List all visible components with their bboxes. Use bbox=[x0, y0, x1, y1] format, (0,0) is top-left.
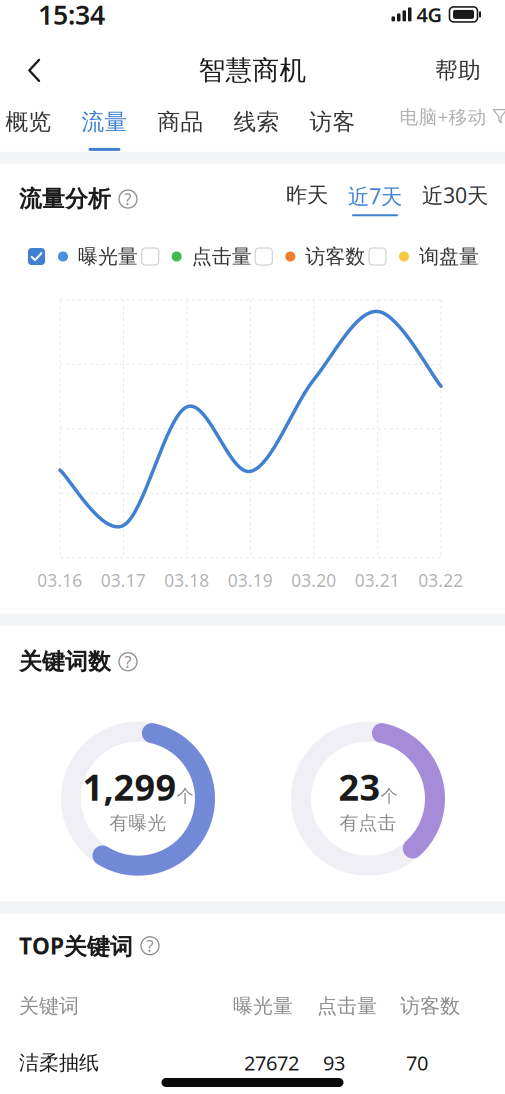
button[interactable]: 访客 bbox=[303, 96, 361, 154]
staticText: 03.21 bbox=[355, 569, 400, 592]
staticText: 帮助 bbox=[435, 56, 481, 84]
staticText: 关键词数 bbox=[19, 648, 111, 676]
staticText: 03.16 bbox=[37, 569, 82, 592]
staticText: TOP关键词 bbox=[19, 931, 133, 961]
staticText: 访客 bbox=[309, 108, 355, 136]
staticText: 概览 bbox=[5, 108, 51, 136]
staticText: 访客数 bbox=[305, 244, 365, 269]
button[interactable]: 帮助 bbox=[423, 45, 481, 95]
staticText: 03.19 bbox=[228, 569, 273, 592]
button[interactable]: 电脑+移动 bbox=[397, 96, 505, 154]
staticText: 电脑+移动 bbox=[399, 104, 486, 129]
staticText: 昨天 bbox=[286, 182, 328, 208]
staticText: 曝光量 bbox=[233, 994, 293, 1018]
staticText: 1,299 bbox=[82, 763, 176, 811]
staticText: 点击量 bbox=[192, 244, 252, 269]
staticText: 有曝光 bbox=[109, 812, 166, 834]
staticText: 有点击 bbox=[339, 812, 396, 834]
staticText: 关键词 bbox=[19, 994, 79, 1018]
staticText: 03.22 bbox=[418, 569, 463, 592]
staticText: ? bbox=[124, 651, 131, 672]
staticText: 流量 bbox=[81, 108, 127, 136]
staticText: 03.20 bbox=[291, 569, 336, 592]
staticText: 个 bbox=[176, 785, 193, 807]
staticText: 商品 bbox=[157, 108, 203, 136]
staticText: 03.18 bbox=[164, 569, 209, 592]
staticText: 近7天 bbox=[348, 182, 402, 210]
button[interactable]: 返回 bbox=[12, 45, 56, 95]
staticText: 4G bbox=[416, 1, 442, 28]
staticText: 个 bbox=[380, 785, 397, 807]
button[interactable]: 流量 bbox=[75, 96, 133, 154]
staticText: 曝光量 bbox=[78, 244, 138, 269]
staticText: 询盘量 bbox=[419, 244, 479, 269]
staticText: 点击量 bbox=[317, 994, 377, 1018]
button[interactable]: 昨天 bbox=[286, 182, 328, 216]
button[interactable]: 访客数 bbox=[255, 244, 365, 269]
staticText: 27672 bbox=[244, 1049, 299, 1076]
staticText: 03.17 bbox=[101, 569, 146, 592]
staticText: 流量分析 bbox=[19, 185, 111, 213]
staticText: 15:34 bbox=[38, 0, 105, 32]
staticText: 93 bbox=[323, 1049, 345, 1076]
staticText: ? bbox=[124, 188, 131, 210]
button[interactable]: 概览 bbox=[0, 96, 57, 154]
staticText: 70 bbox=[406, 1049, 428, 1076]
button[interactable]: 商品 bbox=[151, 96, 209, 154]
staticText: 洁柔抽纸 bbox=[19, 1050, 99, 1075]
staticText: 23 bbox=[338, 763, 380, 811]
staticText: 线索 bbox=[233, 108, 279, 136]
button[interactable]: 近30天 bbox=[422, 181, 488, 217]
staticText: 访客数 bbox=[400, 994, 460, 1018]
button[interactable]: 线索 bbox=[227, 96, 285, 154]
button[interactable]: 询盘量 bbox=[369, 244, 479, 269]
staticText: 智慧商机 bbox=[198, 54, 306, 87]
staticText: 近30天 bbox=[422, 181, 488, 209]
staticText: ? bbox=[146, 935, 153, 956]
button[interactable]: 点击量 bbox=[142, 244, 252, 269]
button[interactable]: 曝光量 bbox=[28, 244, 138, 269]
button[interactable]: 近7天 bbox=[328, 182, 422, 216]
